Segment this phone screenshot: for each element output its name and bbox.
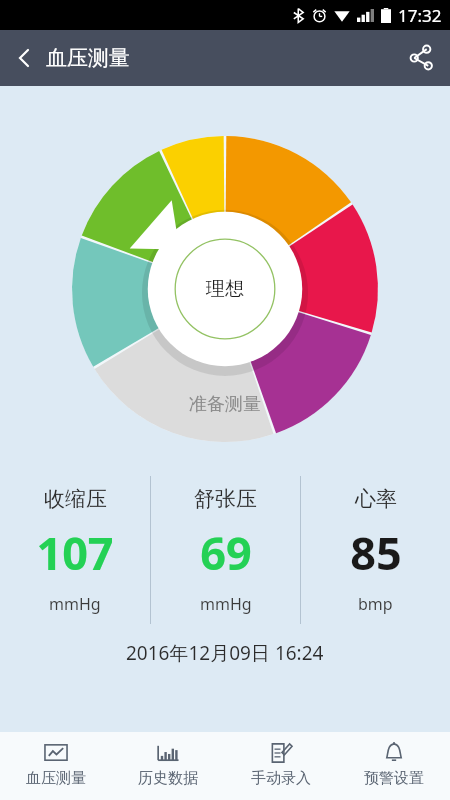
staticText: 69 [200,522,252,583]
staticText: 2016年12月09日 16:24 [126,640,324,666]
staticText: 心率 [355,486,397,512]
staticText: 收缩压 [44,486,107,512]
staticText: 预警设置 [364,769,424,788]
button[interactable]: 手动录入 [224,732,337,800]
staticText: 理想 [206,277,244,301]
staticText: bmp [358,593,393,615]
button[interactable]: 历史数据 [112,732,224,800]
staticText: 手动录入 [251,769,311,788]
staticText: 血压测量 [46,45,130,71]
staticText: 血压测量 [26,769,86,788]
staticText: 107 [36,522,114,583]
staticText: 准备测量 [189,393,261,416]
staticText: 历史数据 [138,769,198,788]
staticText: mmHg [200,593,252,615]
button[interactable]: 血压测量 [0,732,112,800]
staticText: 舒张压 [194,486,257,512]
button[interactable]: 预警设置 [337,732,450,800]
button[interactable]: Share [392,30,450,86]
button[interactable]: Back [0,30,48,86]
staticText: 85 [350,522,402,583]
staticText: mmHg [49,593,101,615]
staticText: 17:32 [398,4,442,27]
